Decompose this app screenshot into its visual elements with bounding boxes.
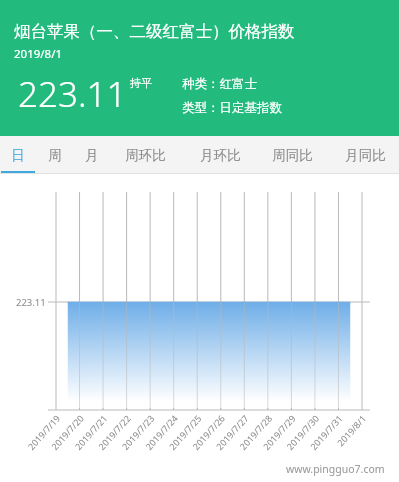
button[interactable]: 周环比: [115, 136, 175, 174]
staticText: 月: [85, 147, 99, 164]
staticText: 持平: [130, 76, 152, 90]
button[interactable]: 月环比: [190, 136, 250, 174]
staticText: 223.11: [18, 70, 127, 118]
staticText: 月同比: [345, 147, 386, 164]
staticText: www.pingguo7.com: [286, 462, 385, 476]
staticText: 月环比: [200, 147, 241, 164]
staticText: 类型：日定基指数: [182, 100, 282, 116]
staticText: 周: [48, 147, 62, 164]
button[interactable]: 周同比: [262, 136, 322, 174]
button[interactable]: 周: [38, 136, 72, 174]
staticText: 种类：红富士: [182, 76, 257, 92]
button[interactable]: 日: [1, 136, 35, 174]
staticText: 周同比: [272, 147, 313, 164]
button[interactable]: 月同比: [335, 136, 395, 174]
staticText: 2019/8/1: [14, 46, 63, 62]
staticText: 烟台苹果（一、二级红富士）价格指数: [14, 21, 295, 42]
button[interactable]: 月: [75, 136, 109, 174]
staticText: 周环比: [125, 147, 166, 164]
staticText: 日: [11, 147, 25, 164]
